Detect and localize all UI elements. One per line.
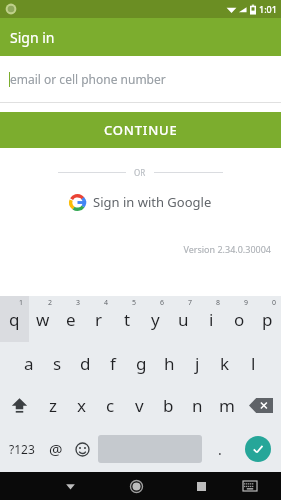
button[interactable]: k [211,342,239,384]
staticText: j [195,352,200,375]
button[interactable]: Shift [0,384,39,426]
button[interactable]: Switch keyboard [232,472,268,500]
button[interactable]: . [205,426,234,472]
staticText: r [95,308,103,331]
staticText: 3 [76,298,81,308]
button[interactable]: l [239,342,267,384]
button[interactable]: p [253,296,281,342]
button[interactable]: o [225,296,253,342]
button[interactable]: ?123 [0,426,43,472]
button[interactable]: d [71,342,99,384]
staticText: o [234,308,245,331]
staticText: 4 [104,298,109,308]
button[interactable]: Back [52,472,89,500]
button[interactable]: Sign in with Google [0,193,281,211]
staticText: email or cell phone number [10,71,166,87]
staticText: d [80,352,91,375]
button[interactable]: y [141,296,169,342]
button[interactable]: email or cell phone number [0,56,281,102]
button[interactable]: v [125,384,154,426]
button[interactable]: Recents [183,472,219,500]
staticText: Sign in with Google [93,193,212,211]
button[interactable]: x [67,384,96,426]
staticText: n [192,394,203,417]
staticText: Version 2.34.0.30004 [0,243,271,255]
staticText: 6 [160,298,165,308]
button[interactable]: @ [43,426,69,472]
staticText: 2 [48,298,53,308]
button[interactable]: Backspace [241,384,281,426]
staticText: f [110,352,116,375]
staticText: p [262,308,273,331]
staticText: s [53,352,62,375]
staticText: ?123 [9,441,35,457]
staticText: z [49,394,57,417]
staticText: a [24,352,34,375]
staticText: x [77,394,86,417]
staticText: t [124,308,131,331]
staticText: h [164,352,175,375]
button[interactable]: t [113,296,141,342]
staticText: . [218,440,222,459]
staticText: 9 [244,298,249,308]
button[interactable]: a [15,342,43,384]
staticText: l [251,352,256,375]
button[interactable]: CONTINUE [0,112,281,148]
staticText: b [163,394,174,417]
button[interactable]: e [57,296,85,342]
button[interactable]: h [155,342,183,384]
staticText: @ [49,439,63,459]
staticText: OR [134,167,146,178]
staticText: w [36,308,50,331]
staticText: e [66,308,76,331]
staticText: 1 [19,298,24,308]
staticText: CONTINUE [104,121,178,139]
button[interactable]: b [154,384,183,426]
button[interactable]: i [197,296,225,342]
button[interactable]: n [183,384,212,426]
staticText: g [136,352,147,375]
staticText: 5 [132,298,137,308]
staticText: v [135,394,144,417]
button[interactable]: r [85,296,113,342]
staticText: 0 [272,298,277,308]
button[interactable]: c [96,384,125,426]
staticText: c [106,394,115,417]
button[interactable]: j [183,342,211,384]
staticText: m [219,394,235,417]
staticText: q [9,308,20,331]
button[interactable]: q [0,296,29,342]
button[interactable]: s [43,342,71,384]
button[interactable]: Enter [245,436,271,462]
button[interactable]: w [29,296,57,342]
staticText: y [151,308,160,331]
button[interactable]: u [169,296,197,342]
button[interactable]: Sign in [0,18,281,56]
staticText: u [178,308,189,331]
button[interactable]: Emoji [69,426,95,472]
staticText: Sign in [10,28,55,47]
button[interactable]: f [99,342,127,384]
button[interactable]: m [212,384,241,426]
staticText: 7 [188,298,193,308]
staticText: i [209,308,214,331]
staticText: 8 [216,298,221,308]
button[interactable]: Home [118,472,154,500]
button[interactable]: z [39,384,67,426]
button[interactable]: g [127,342,155,384]
staticText: k [220,352,230,375]
staticText: 1:01 [259,3,277,15]
